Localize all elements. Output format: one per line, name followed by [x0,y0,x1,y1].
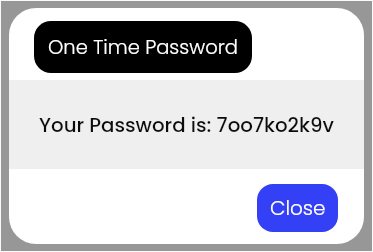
button[interactable]: One Time Password [34,21,252,73]
staticText: Your Password is: 7oo7ko2k9v [39,111,334,139]
button[interactable]: Close dialog [257,184,338,232]
staticText: One Time Password [48,34,238,61]
staticText: Close [270,194,326,222]
